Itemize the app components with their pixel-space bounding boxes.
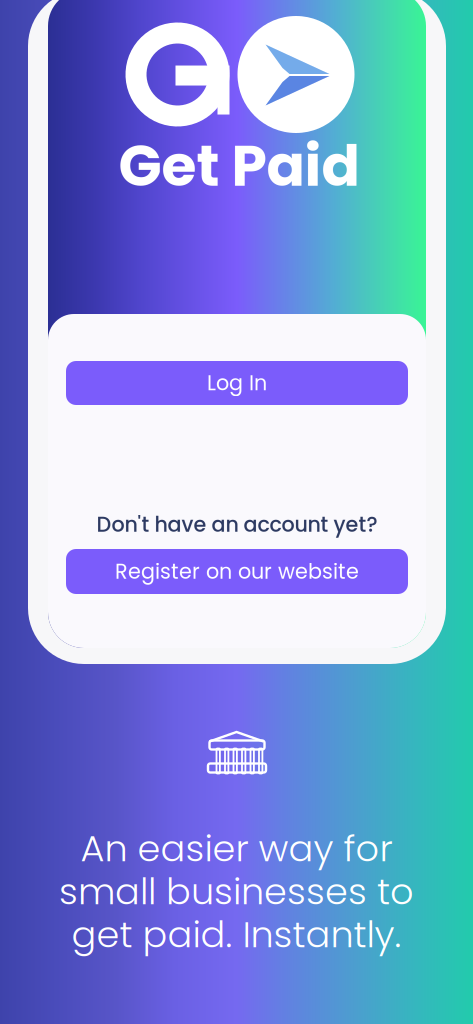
staticText: An easier way for xyxy=(80,823,392,874)
staticText: Log In xyxy=(207,368,267,397)
button[interactable]: Log In xyxy=(66,361,408,405)
staticText: Register on our website xyxy=(115,557,359,586)
staticText: Get Paid xyxy=(118,126,359,206)
staticText: get paid. Instantly. xyxy=(71,909,401,960)
staticText: Don't have an account yet? xyxy=(96,510,377,539)
staticText: small businesses to xyxy=(59,866,414,917)
button[interactable]: Register on our website xyxy=(66,549,408,594)
